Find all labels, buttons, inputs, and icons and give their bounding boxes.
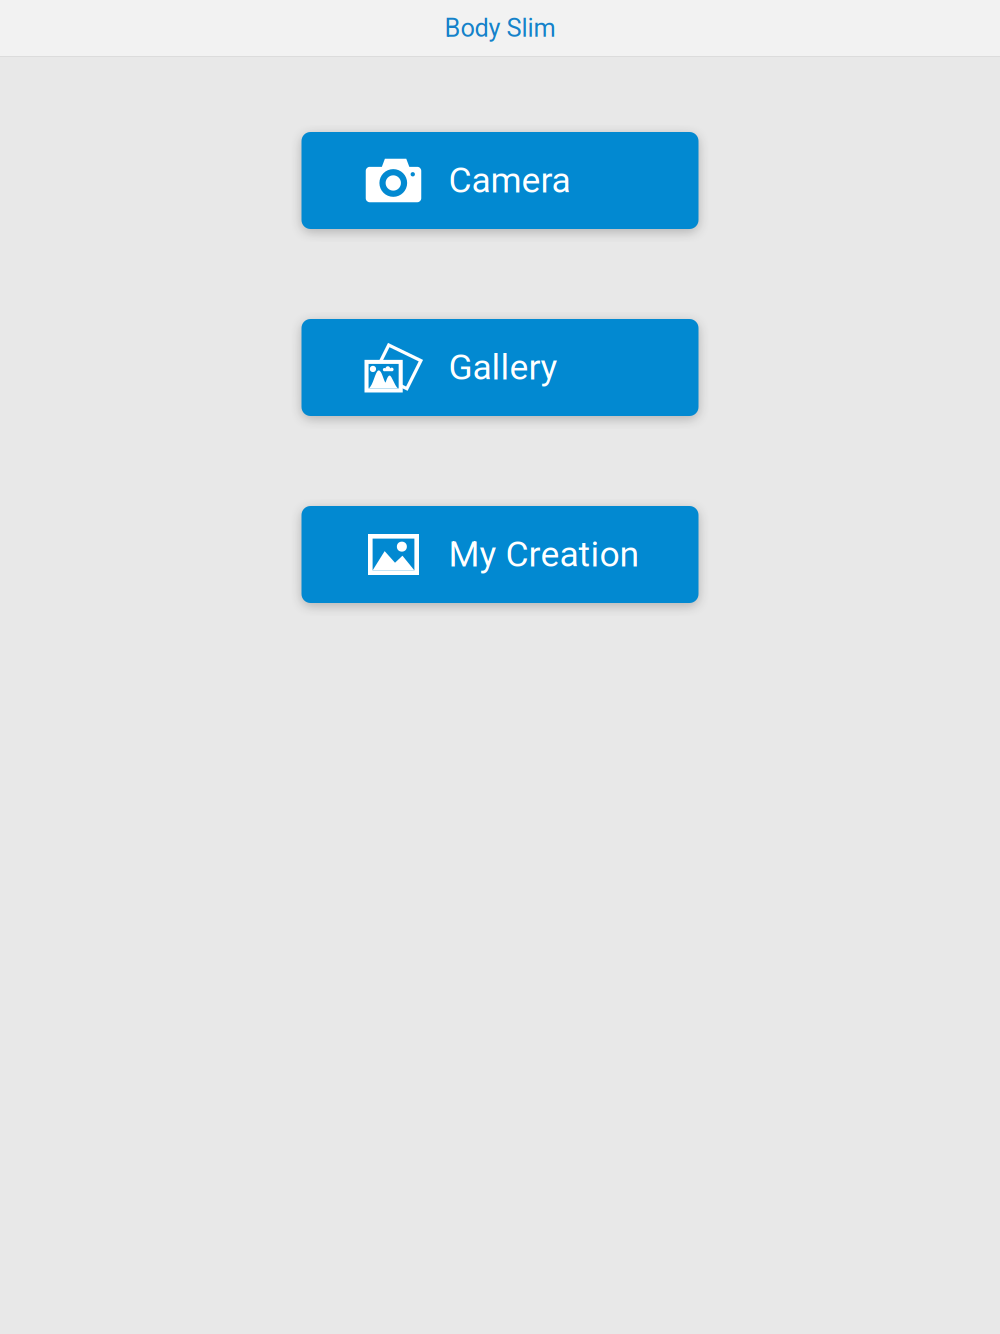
button[interactable]: Gallery bbox=[301, 319, 698, 416]
staticText: My Creation bbox=[448, 534, 639, 575]
staticText: Body Slim bbox=[444, 13, 555, 43]
button[interactable]: My Creation bbox=[301, 506, 698, 603]
button[interactable]: Camera bbox=[301, 132, 698, 229]
staticText: Gallery bbox=[448, 347, 557, 388]
staticText: Camera bbox=[448, 160, 570, 201]
